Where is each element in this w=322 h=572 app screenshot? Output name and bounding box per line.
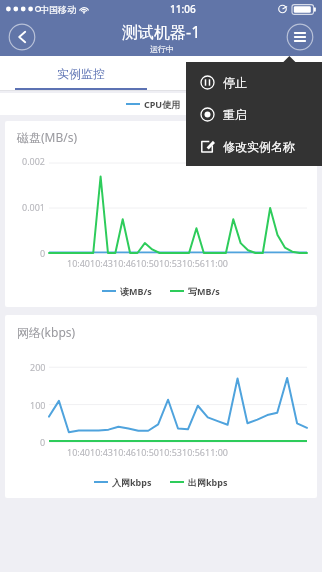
staticText: 10:43 — [90, 257, 114, 269]
button[interactable]: 停止 — [186, 66, 322, 98]
staticText: 实例监控 — [57, 66, 105, 81]
button[interactable]: 读MB/s — [102, 285, 152, 297]
staticText: 10:40 — [67, 257, 91, 269]
staticText: 网络(kbps) — [17, 324, 76, 340]
staticText: 11:00 — [205, 257, 229, 269]
staticText: 中国移动 — [40, 4, 76, 15]
staticText: 11:00 — [205, 446, 229, 458]
staticText: 实例详情 — [218, 66, 266, 81]
button[interactable]: 实例监控 — [0, 56, 161, 90]
staticText: 读MB/s — [120, 285, 152, 297]
staticText: 0.002 — [22, 155, 46, 167]
button[interactable]: 入网kbps — [94, 476, 152, 488]
staticText: 0.001 — [22, 201, 46, 213]
button[interactable]: 出网kbps — [170, 476, 228, 488]
staticText: 10:46 — [113, 257, 137, 269]
button[interactable]: 修改实例名称 — [186, 130, 322, 162]
staticText: 10:50 — [136, 257, 160, 269]
staticText: CPU使用 — [144, 98, 181, 110]
staticText: 10:53 — [159, 257, 183, 269]
staticText: 0 — [40, 247, 46, 259]
staticText: 磁盘(MB/s) — [17, 129, 78, 145]
staticText: 10:40 — [67, 446, 91, 458]
staticText: 重启 — [223, 107, 247, 122]
staticText: 10:43 — [90, 446, 114, 458]
staticText: 10:46 — [113, 446, 137, 458]
staticText: 入网kbps — [112, 476, 152, 488]
staticText: 10:50 — [136, 446, 160, 458]
staticText: 10:56 — [182, 446, 206, 458]
button[interactable]: Menu — [286, 23, 314, 51]
staticText: 100 — [30, 399, 46, 411]
staticText: 写MB/s — [188, 285, 220, 297]
staticText: 10:53 — [159, 446, 183, 458]
button[interactable]: 实例详情 — [161, 56, 322, 90]
staticText: 11:06 — [170, 2, 196, 16]
staticText: 出网kbps — [188, 476, 228, 488]
staticText: 停止 — [223, 75, 247, 90]
button[interactable]: 重启 — [186, 98, 322, 130]
staticText: 0 — [40, 436, 46, 448]
button[interactable]: 写MB/s — [170, 285, 220, 297]
staticText: 10:56 — [182, 257, 206, 269]
staticText: 修改实例名称 — [223, 139, 295, 154]
button[interactable]: Back — [8, 23, 36, 51]
staticText: 测试机器-1 — [122, 21, 201, 43]
staticText: 200 — [30, 361, 46, 373]
staticText: 运行中 — [150, 44, 174, 54]
